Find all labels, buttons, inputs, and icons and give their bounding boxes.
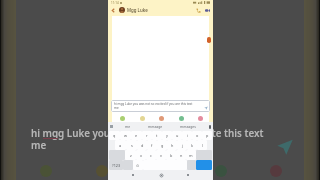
button[interactable]: e: [131, 131, 142, 140]
button[interactable]: Back: [110, 7, 117, 14]
button[interactable]: i: [182, 131, 192, 140]
button[interactable]: k: [187, 140, 197, 150]
button[interactable]: t: [152, 131, 162, 140]
button[interactable]: d: [137, 140, 147, 150]
button[interactable]: Apps: [196, 114, 204, 122]
button[interactable]: c: [146, 150, 156, 160]
button[interactable]: s: [126, 140, 137, 150]
button[interactable]: r: [142, 131, 152, 140]
button[interactable]: Back: [130, 172, 136, 178]
staticText: y: [166, 133, 168, 138]
staticText: r: [146, 133, 148, 138]
staticText: message: [148, 124, 163, 129]
staticText: e: [135, 133, 138, 138]
button[interactable]: [196, 160, 212, 170]
button[interactable]: j: [177, 140, 187, 150]
staticText: t: [156, 133, 158, 138]
staticText: c: [150, 153, 152, 158]
staticText: q: [113, 133, 116, 138]
staticText: me: [114, 106, 119, 110]
button[interactable]: m: [186, 150, 196, 160]
button[interactable]: v: [156, 150, 166, 160]
button[interactable]: l: [197, 140, 207, 150]
button[interactable]: a: [115, 140, 126, 150]
button[interactable]: w: [120, 131, 131, 140]
button[interactable]: hi mgg Luke you was not so excited if yo…: [111, 100, 210, 112]
staticText: hi mgg Luke you want to read and write t…: [31, 127, 264, 140]
button[interactable]: Video call: [204, 7, 210, 13]
staticText: ⊙: [136, 163, 140, 167]
staticText: z: [130, 153, 132, 158]
staticText: ?123: [112, 163, 121, 168]
staticText: k: [191, 143, 194, 148]
button[interactable]: p: [202, 131, 212, 140]
staticText: Mgg Luke: [127, 7, 148, 13]
staticText: j: [182, 143, 183, 148]
staticText: me: [125, 124, 131, 129]
button[interactable]: ?123: [109, 160, 123, 170]
staticText: hi mgg Luke you was not so excited if yo…: [114, 102, 193, 106]
button[interactable]: u: [172, 131, 182, 140]
staticText: d: [141, 143, 144, 148]
staticText: p: [206, 133, 209, 138]
staticText: n: [180, 153, 183, 158]
staticText: i: [187, 133, 188, 138]
staticText: m: [189, 153, 193, 158]
staticText: s: [131, 143, 133, 148]
staticText: v: [160, 153, 162, 158]
button[interactable]: y: [162, 131, 172, 140]
button[interactable]: ⊙: [133, 160, 143, 170]
button[interactable]: x: [136, 150, 146, 160]
button[interactable]: o: [192, 131, 202, 140]
staticText: o: [196, 133, 199, 138]
button[interactable]: h: [167, 140, 177, 150]
button[interactable]: b: [166, 150, 176, 160]
button[interactable]: Camera: [157, 114, 165, 122]
staticText: g: [161, 143, 164, 148]
staticText: u: [176, 133, 179, 138]
button[interactable]: Home: [158, 172, 164, 178]
staticText: me: [31, 139, 47, 152]
button[interactable]: Draw: [177, 114, 185, 122]
button[interactable]: g: [157, 140, 167, 150]
staticText: a: [119, 143, 122, 148]
staticText: b: [170, 153, 173, 158]
button[interactable]: n: [176, 150, 186, 160]
staticText: w: [124, 133, 127, 138]
staticText: l: [202, 143, 203, 148]
button[interactable]: Voice call: [195, 7, 201, 13]
button[interactable]: q: [109, 131, 120, 140]
staticText: messages: [180, 124, 196, 129]
staticText: 11:14: [111, 1, 119, 5]
button[interactable]: z: [125, 150, 136, 160]
staticText: x: [140, 153, 143, 158]
staticText: f: [151, 143, 153, 148]
button[interactable]: f: [147, 140, 157, 150]
button[interactable]: Gallery: [138, 114, 146, 122]
button[interactable]: Sticker: [118, 114, 126, 122]
button[interactable]: Recents: [185, 172, 191, 178]
staticText: h: [171, 143, 174, 148]
